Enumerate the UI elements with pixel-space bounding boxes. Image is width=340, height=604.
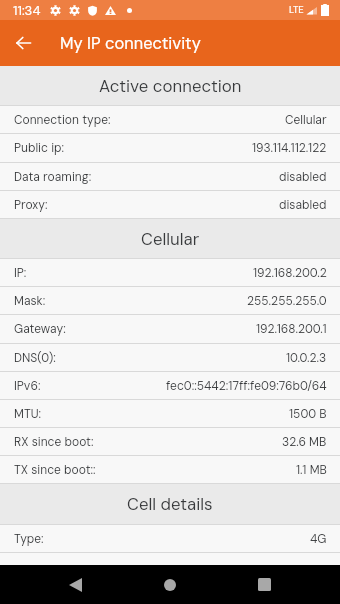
button[interactable]: Data roaming: (0, 163, 340, 190)
staticText: 1500 B (289, 406, 327, 422)
staticText: disabled (279, 169, 327, 185)
staticText: Type: (14, 531, 44, 547)
staticText: Public ip: (14, 140, 65, 156)
staticText: Mask: (14, 293, 46, 309)
staticText: IPv6: (14, 378, 41, 394)
staticText: Connection type: (14, 112, 111, 128)
button[interactable]: IPv6: (0, 372, 340, 399)
staticText: IP: (14, 265, 27, 281)
staticText: Active connection (99, 75, 242, 97)
button[interactable]: Recent apps (240, 565, 288, 604)
button[interactable]: Navigate up (0, 20, 46, 66)
staticText: 11:34 (13, 2, 41, 19)
staticText: Data roaming: (14, 169, 92, 185)
staticText: Cellular (285, 112, 327, 128)
staticText: 192.168.200.2 (253, 265, 327, 281)
button[interactable]: IP: (0, 259, 340, 286)
staticText: disabled (279, 197, 327, 213)
button[interactable]: TX since boot:: (0, 456, 340, 483)
button[interactable]: Public ip: (0, 134, 340, 162)
staticText: 4G (310, 531, 327, 547)
button[interactable]: Home (146, 565, 194, 604)
staticText: 255.255.255.0 (247, 293, 327, 309)
button[interactable]: Mask: (0, 287, 340, 314)
button[interactable]: MTU: (0, 400, 340, 427)
button[interactable]: Connection type: (0, 106, 340, 133)
button[interactable]: DNS(0): (0, 344, 340, 371)
staticText: MTU: (14, 406, 42, 422)
staticText: Proxy: (14, 197, 48, 213)
staticText: fec0::5442:17ff:fe09:76b0/64 (166, 378, 327, 394)
button[interactable]: Type: (0, 525, 340, 552)
staticText: 32.6 MB (282, 434, 327, 450)
staticText: My IP connectivity (60, 33, 201, 54)
staticText: Cell details (127, 493, 213, 515)
staticText: TX since boot:: (14, 462, 96, 478)
staticText: 1.1 MB (296, 462, 327, 478)
button[interactable]: Gateway: (0, 315, 340, 343)
staticText: LTE (289, 4, 304, 16)
button[interactable]: Back (51, 565, 99, 604)
staticText: RX since boot: (14, 434, 94, 450)
staticText: 10.0.2.3 (286, 350, 327, 366)
button[interactable]: RX since boot: (0, 428, 340, 455)
staticText: Cellular (141, 228, 200, 250)
staticText: Gateway: (14, 321, 66, 337)
staticText: DNS(0): (14, 350, 56, 366)
staticText: 193.114.112.122 (252, 140, 327, 156)
button[interactable]: Proxy: (0, 191, 340, 218)
staticText: 192.168.200.1 (256, 321, 327, 337)
